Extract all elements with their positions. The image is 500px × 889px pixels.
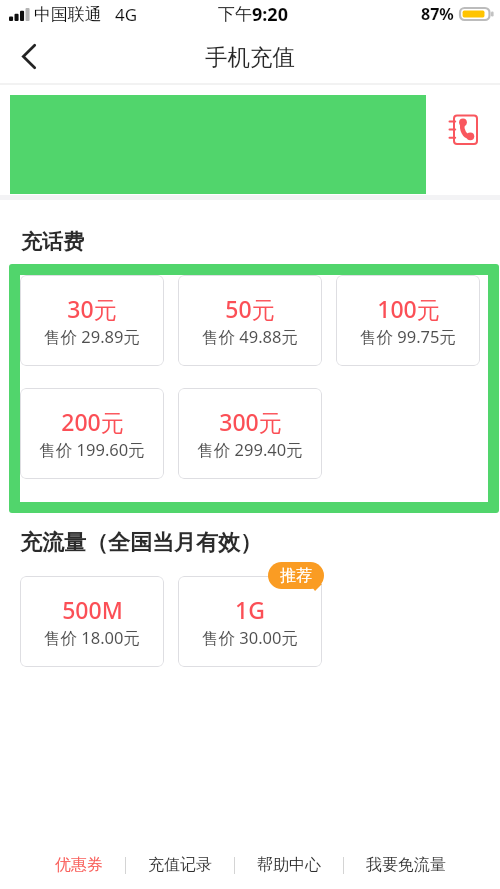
button[interactable]: Back [0,28,56,83]
button[interactable]: 1G [178,576,322,667]
button[interactable]: Contacts [448,110,492,152]
button[interactable]: 200元 [20,388,164,479]
staticText: 500M [62,594,123,625]
button[interactable]: 300元 [178,388,322,479]
staticText: 充话费 [21,229,84,255]
staticText: 手机充值 [205,43,295,71]
staticText: 中国联通 [34,4,102,25]
staticText: 售价 18.00元 [44,626,140,649]
staticText: 100元 [377,293,440,324]
staticText: 售价 199.60元 [39,438,145,461]
button[interactable]: 充值记录 [148,855,212,875]
staticText: 帮助中心 [257,855,321,875]
button[interactable]: 50元 [178,275,322,366]
staticText: 87% [421,3,454,25]
staticText: 我要免流量 [366,855,446,875]
staticText: 30元 [67,293,117,324]
staticText: 9:20 [252,2,288,27]
staticText: 充值记录 [148,855,212,875]
staticText: 50元 [225,293,275,324]
staticText: 4G [115,3,138,26]
button[interactable]: 100元 [336,275,480,366]
staticText: 充流量（全国当月有效） [20,529,262,557]
button[interactable]: 我要免流量 [366,855,446,875]
staticText: 售价 49.88元 [202,325,298,348]
staticText: 300元 [219,406,282,437]
staticText: 1G [235,594,265,625]
staticText: 优惠券 [55,855,103,875]
staticText: 售价 99.75元 [360,325,456,348]
button[interactable]: 帮助中心 [257,855,321,875]
staticText: 下午 [218,4,252,25]
staticText: 售价 299.40元 [197,438,303,461]
button[interactable]: 优惠券 [55,855,103,875]
staticText: 推荐 [280,566,312,586]
button[interactable]: 500M [20,576,164,667]
button[interactable]: 30元 [20,275,164,366]
staticText: 200元 [61,406,124,437]
staticText: 售价 29.89元 [44,325,140,348]
staticText: 售价 30.00元 [202,626,298,649]
